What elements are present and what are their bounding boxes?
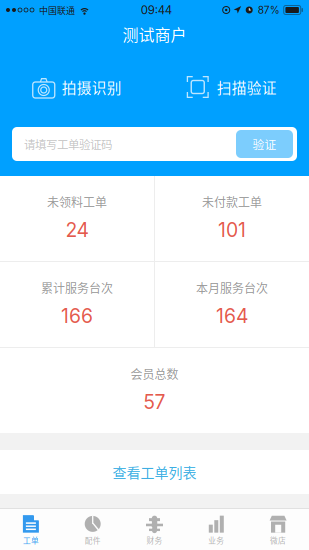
button[interactable]: 查看工单列表: [0, 450, 309, 494]
staticText: 24: [65, 218, 88, 242]
staticText: 验证: [252, 135, 276, 152]
button[interactable]: 验证: [236, 130, 293, 158]
staticText: 查看工单列表: [112, 462, 196, 482]
staticText: 87%: [258, 4, 280, 16]
staticText: 101: [218, 218, 246, 242]
staticText: 扫描验证: [217, 76, 277, 98]
staticText: 164: [216, 304, 248, 328]
staticText: 微店: [270, 535, 286, 546]
staticText: 业务: [208, 535, 224, 546]
button[interactable]: 工单: [0, 509, 62, 550]
staticText: 09:44: [141, 3, 172, 17]
button[interactable]: 业务: [185, 509, 247, 550]
staticText: 拍摄识别: [62, 76, 122, 98]
button[interactable]: 财务: [124, 509, 185, 550]
staticText: 57: [143, 390, 165, 414]
staticText: 中国联通: [39, 3, 75, 16]
button[interactable]: 扫描验证: [154, 48, 309, 126]
staticText: 财务: [146, 535, 162, 546]
button[interactable]: 拍摄识别: [0, 48, 154, 126]
staticText: 本月服务台次: [196, 279, 268, 296]
staticText: 工单: [23, 535, 39, 546]
staticText: 未付款工单: [202, 193, 262, 210]
staticText: 请填写工单验证码: [24, 136, 112, 152]
staticText: 166: [61, 304, 93, 328]
staticText: 配件: [85, 535, 101, 546]
button[interactable]: 微店: [247, 509, 309, 550]
staticText: 会员总数: [130, 365, 178, 382]
staticText: 累计服务台次: [41, 279, 113, 296]
button[interactable]: 配件: [62, 509, 124, 550]
staticText: 未领料工单: [47, 193, 107, 210]
staticText: 测试商户: [122, 22, 186, 46]
